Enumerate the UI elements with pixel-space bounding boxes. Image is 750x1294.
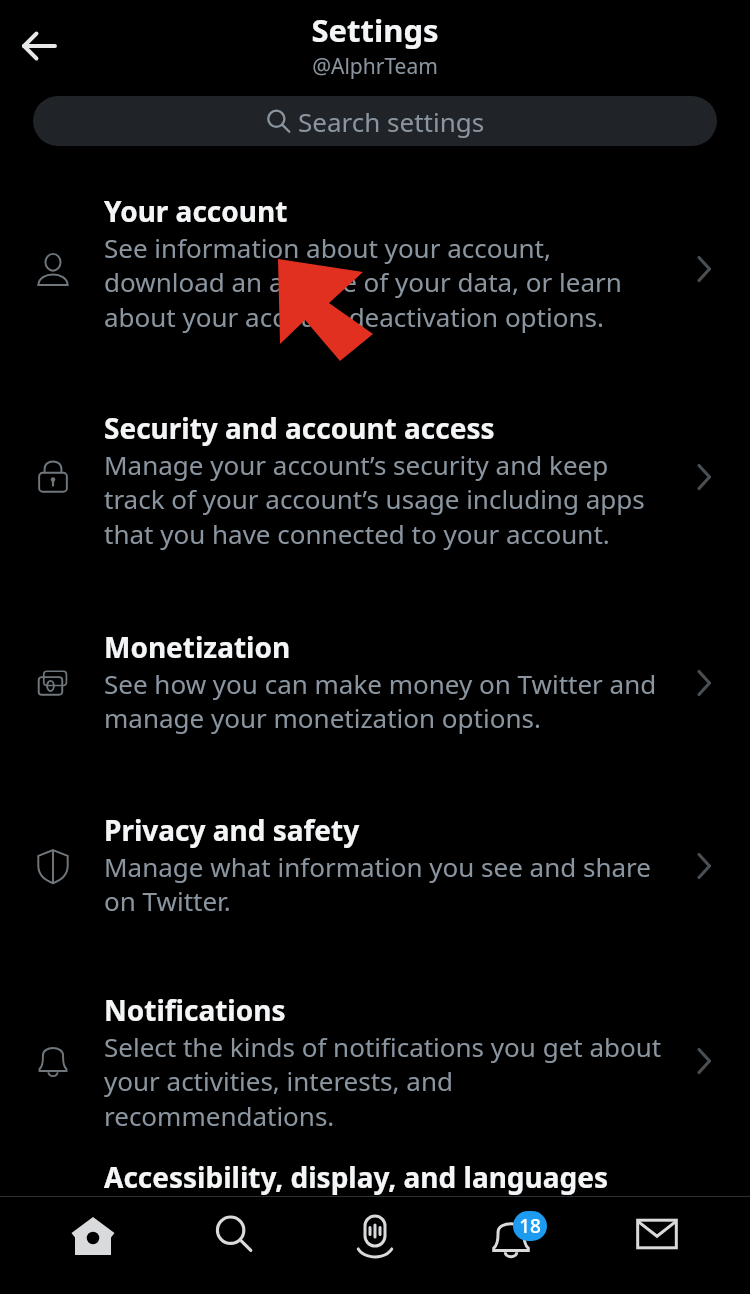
- staticText: 18: [519, 1213, 541, 1239]
- staticText: See how you can make money on Twitter an…: [104, 666, 662, 736]
- staticText: Security and account access: [104, 409, 495, 447]
- staticText: Settings: [311, 9, 439, 51]
- button[interactable]: Home: [45, 1211, 141, 1277]
- button[interactable]: Your account: [0, 176, 750, 362]
- staticText: @AlphrTeam: [312, 52, 438, 81]
- staticText: Monetization: [104, 628, 291, 666]
- button[interactable]: Monetization: [0, 612, 750, 754]
- staticText: Privacy and safety: [104, 811, 360, 849]
- staticText: Search settings: [298, 104, 485, 139]
- button[interactable]: Spaces: [327, 1211, 423, 1277]
- staticText: Notifications: [104, 991, 286, 1029]
- staticText: Select the kinds of notifications you ge…: [104, 1029, 662, 1134]
- button[interactable]: Notifications: [0, 975, 750, 1147]
- button[interactable]: Search: [186, 1211, 282, 1277]
- button[interactable]: Privacy and safety: [0, 795, 750, 937]
- button[interactable]: Notifications, 18 unread: [468, 1211, 564, 1277]
- staticText: Accessibility, display, and languages: [104, 1158, 609, 1196]
- staticText: Manage what information you see and shar…: [104, 849, 662, 919]
- staticText: See information about your account, down…: [104, 230, 662, 335]
- button[interactable]: Back: [7, 13, 73, 79]
- button[interactable]: Accessibility, display, and languages: [0, 1152, 750, 1196]
- staticText: Your account: [104, 192, 288, 230]
- button[interactable]: Messages: [609, 1211, 705, 1277]
- staticText: Manage your account’s security and keep …: [104, 447, 662, 552]
- button[interactable]: Search settings: [33, 96, 717, 146]
- button[interactable]: Security and account access: [0, 393, 750, 561]
